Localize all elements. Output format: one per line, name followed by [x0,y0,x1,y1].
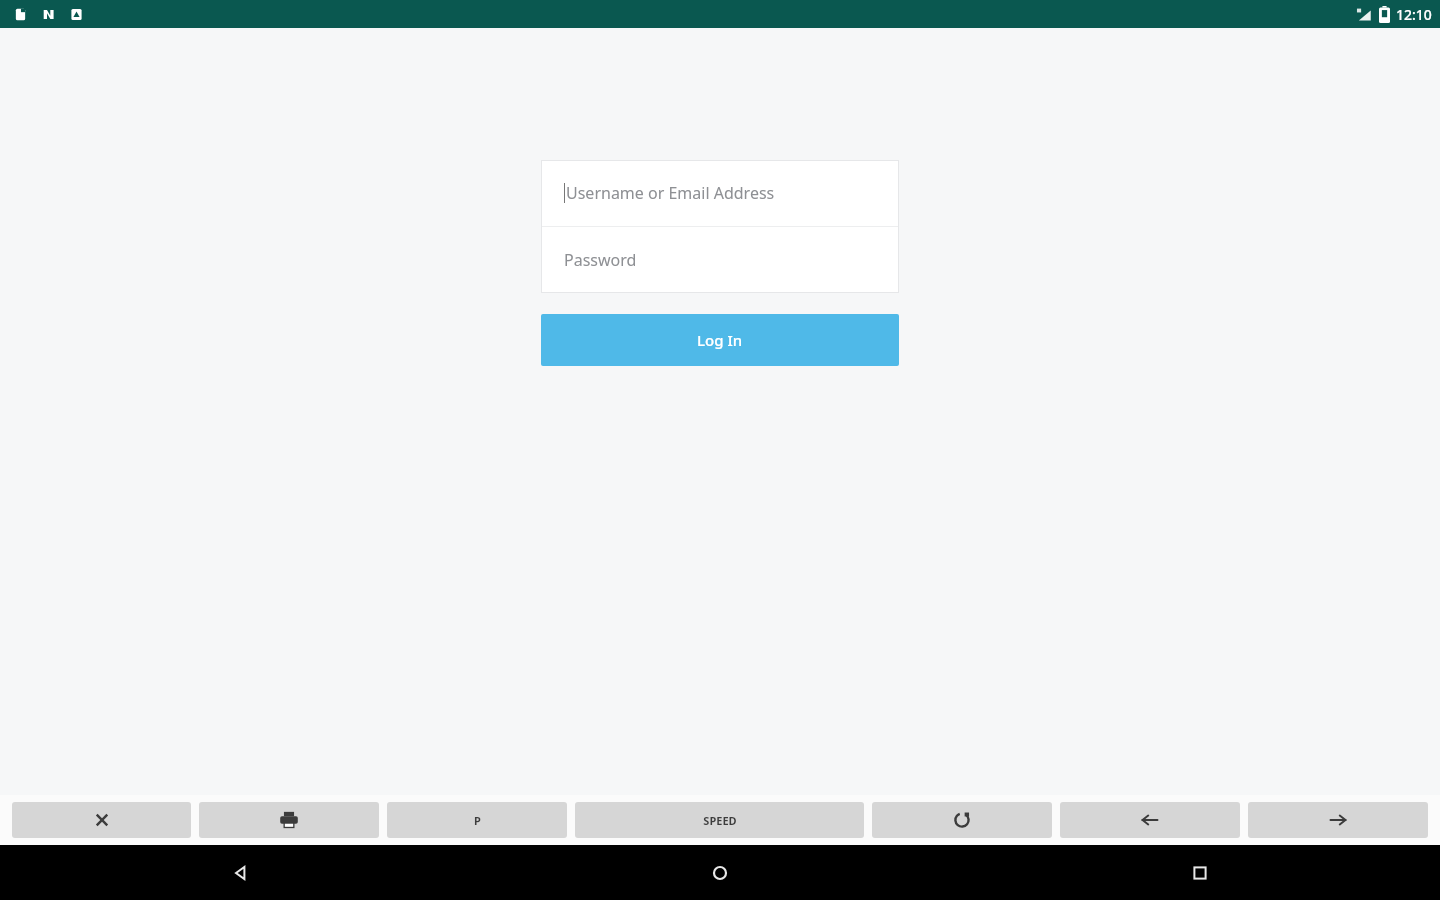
staticText: P [474,813,481,828]
button[interactable]: Back [0,845,480,900]
button[interactable]: Close [12,802,191,838]
button[interactable]: SPEED [575,802,864,838]
staticText: Log In [697,330,743,350]
button[interactable]: Home [480,845,960,900]
staticText: SPEED [703,813,737,828]
button[interactable]: Username or Email Address [541,160,899,226]
staticText: 12:10 [1396,5,1432,24]
button[interactable]: Reload [872,802,1052,838]
button[interactable]: Password [541,227,899,293]
staticText: Username or Email Address [566,182,775,204]
staticText: Password [564,249,637,271]
button[interactable]: Recent apps [960,845,1440,900]
button[interactable]: Back [1060,802,1240,838]
button[interactable]: P [387,802,567,838]
button[interactable]: Print [199,802,379,838]
button[interactable]: Log In [541,314,899,366]
button[interactable]: Forward [1248,802,1428,838]
